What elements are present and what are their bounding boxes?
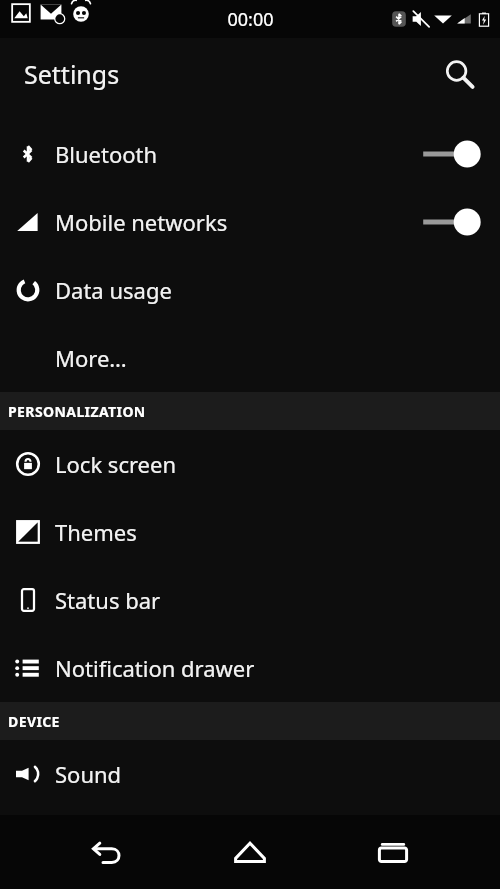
button[interactable]: More… <box>0 324 500 392</box>
staticText: Sound <box>55 759 122 789</box>
staticText: Bluetooth <box>55 139 158 169</box>
staticText: Status bar <box>55 585 161 615</box>
button[interactable]: Data usage <box>0 256 500 324</box>
button[interactable]: Notification drawer <box>0 634 500 702</box>
button[interactable]: Search <box>436 51 482 97</box>
staticText: Data usage <box>55 275 172 305</box>
button[interactable]: Recent apps <box>357 816 429 888</box>
button[interactable]: Toggle Mobile networks <box>408 198 488 246</box>
staticText: Settings <box>24 57 120 91</box>
button[interactable]: Back <box>71 816 143 888</box>
staticText: Notification drawer <box>55 653 255 683</box>
button[interactable]: Bluetooth <box>0 120 500 188</box>
staticText: DEVICE <box>8 712 60 731</box>
button[interactable]: Status bar <box>0 566 500 634</box>
staticText: More… <box>55 343 127 373</box>
button[interactable]: Sound <box>0 740 500 808</box>
staticText: 00:00 <box>227 7 274 32</box>
button[interactable]: Mobile networks <box>0 188 500 256</box>
button[interactable]: Lock screen <box>0 430 500 498</box>
button[interactable]: Home <box>214 816 286 888</box>
staticText: Mobile networks <box>55 207 228 237</box>
button[interactable]: Toggle Bluetooth <box>408 130 488 178</box>
staticText: Lock screen <box>55 449 177 479</box>
staticText: PERSONALIZATION <box>8 402 146 421</box>
staticText: Themes <box>55 517 137 547</box>
button[interactable]: Themes <box>0 498 500 566</box>
